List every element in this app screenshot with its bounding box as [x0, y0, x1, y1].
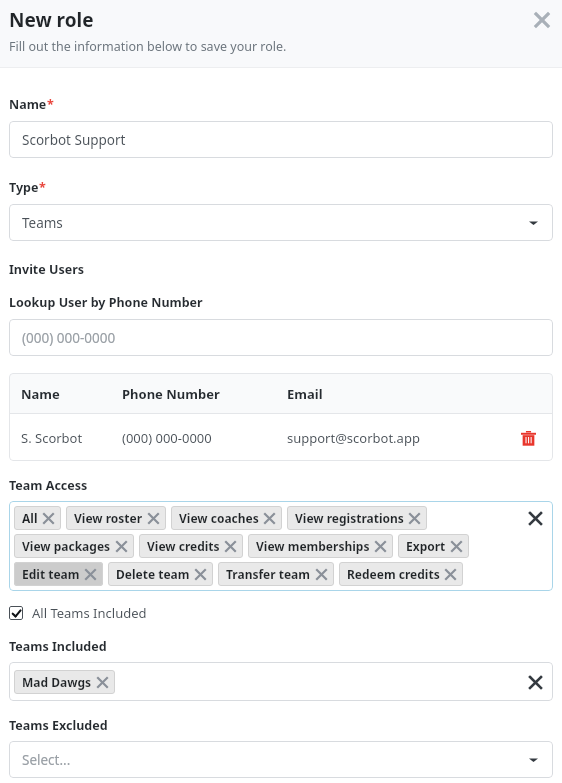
button[interactable]: Redeem credits: [339, 562, 463, 586]
staticText: Delete team: [116, 566, 190, 582]
staticText: View packages: [22, 538, 111, 554]
staticText: Invite Users: [9, 261, 85, 278]
staticText: Fill out the information below to save y…: [9, 38, 287, 55]
button[interactable]: View coaches: [171, 506, 282, 530]
button[interactable]: Delete team: [108, 562, 213, 586]
button[interactable]: Edit team: [14, 562, 103, 586]
staticText: View coaches: [179, 510, 259, 526]
button[interactable]: Scorbot Support: [9, 121, 553, 158]
staticText: (000) 000-0000: [22, 329, 116, 347]
staticText: Mad Dawgs: [22, 674, 92, 690]
staticText: support@scorbot.app: [287, 429, 420, 447]
button[interactable]: All Teams Included: [9, 604, 147, 622]
button[interactable]: Export: [398, 534, 469, 558]
staticText: Export: [406, 538, 446, 554]
staticText: (000) 000-0000: [122, 429, 212, 447]
staticText: Phone Number: [122, 385, 220, 403]
button[interactable]: View credits: [139, 534, 243, 558]
staticText: Name: [21, 385, 60, 403]
staticText: Team Access: [9, 477, 88, 494]
button[interactable]: View registrations: [287, 506, 427, 530]
button[interactable]: Mad Dawgs: [14, 670, 115, 694]
staticText: Select...: [22, 751, 71, 769]
staticText: Teams: [22, 214, 63, 232]
staticText: Email: [287, 385, 323, 403]
button[interactable]: Transfer team: [218, 562, 334, 586]
button[interactable]: Clear team access: [525, 508, 545, 528]
staticText: Scorbot Support: [22, 131, 126, 149]
button[interactable]: Select...: [9, 741, 553, 778]
staticText: Redeem credits: [347, 566, 440, 582]
staticText: All Teams Included: [32, 604, 147, 622]
button[interactable]: View roster: [66, 506, 166, 530]
staticText: Type: [9, 179, 39, 196]
button[interactable]: Delete user: [516, 426, 540, 450]
staticText: View credits: [147, 538, 220, 554]
button[interactable]: Clear teams included: [525, 672, 545, 692]
button[interactable]: View packages: [14, 534, 134, 558]
staticText: Name: [9, 96, 47, 113]
staticText: Lookup User by Phone Number: [9, 294, 203, 311]
staticText: Teams Excluded: [9, 717, 108, 734]
staticText: Edit team: [22, 566, 80, 582]
button[interactable]: All: [14, 506, 61, 530]
button[interactable]: Close: [530, 8, 554, 32]
staticText: View memberships: [256, 538, 370, 554]
button[interactable]: Teams: [9, 204, 553, 241]
staticText: *: [39, 179, 46, 196]
staticText: S. Scorbot: [21, 429, 83, 447]
staticText: *: [47, 96, 54, 113]
staticText: Teams Included: [9, 638, 107, 655]
staticText: Transfer team: [226, 566, 311, 582]
staticText: New role: [9, 7, 94, 33]
button[interactable]: (000) 000-0000: [9, 319, 553, 356]
staticText: All: [22, 510, 38, 526]
staticText: View roster: [74, 510, 143, 526]
staticText: View registrations: [295, 510, 404, 526]
button[interactable]: View memberships: [248, 534, 393, 558]
